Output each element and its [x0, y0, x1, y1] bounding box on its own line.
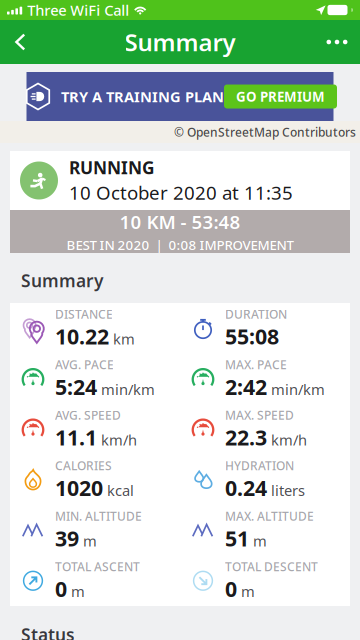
staticText: m: [83, 531, 97, 551]
staticText: HYDRATION: [225, 458, 294, 473]
staticText: km/h: [271, 430, 307, 450]
staticText: Three WiFi Call: [27, 0, 129, 20]
staticText: Summary: [124, 26, 235, 58]
staticText: 10.22: [55, 322, 109, 350]
staticText: GO PREMIUM: [236, 88, 325, 105]
staticText: AVG. SPEED: [55, 407, 121, 423]
staticText: RUNNING: [69, 156, 155, 179]
button[interactable]: TRY A TRAINING PLAN: [26, 64, 333, 121]
staticText: 5:24: [55, 373, 97, 401]
staticText: min/km: [101, 380, 155, 399]
staticText: 1020: [55, 474, 103, 502]
staticText: Status: [21, 623, 75, 640]
staticText: TOTAL ASCENT: [55, 559, 140, 574]
staticText: min/km: [271, 380, 325, 399]
staticText: AVG. PACE: [55, 357, 114, 372]
button[interactable]: Back: [0, 20, 40, 64]
staticText: liters: [271, 481, 305, 500]
staticText: © OpenStreetMap Contributors: [174, 124, 356, 140]
staticText: m: [71, 582, 85, 601]
staticText: MAX. ALTITUDE: [225, 508, 314, 524]
staticText: DURATION: [225, 306, 287, 322]
staticText: Summary: [21, 269, 103, 292]
staticText: DISTANCE: [55, 306, 113, 322]
staticText: m: [253, 531, 267, 551]
staticText: kcal: [107, 481, 134, 500]
staticText: 10 KM - 53:48: [119, 209, 240, 234]
staticText: MIN. ALTITUDE: [55, 508, 142, 524]
staticText: m: [241, 582, 255, 601]
staticText: 2:42: [225, 373, 267, 401]
staticText: 0.24: [225, 474, 267, 502]
staticText: TRY A TRAINING PLAN: [61, 87, 224, 106]
staticText: 51: [225, 524, 249, 552]
staticText: km/h: [101, 430, 137, 450]
staticText: 10 October 2020 at 11:35: [69, 180, 293, 205]
button[interactable]: More options: [314, 20, 360, 64]
staticText: MAX. PACE: [225, 357, 287, 372]
staticText: km: [113, 329, 135, 349]
staticText: 22.3: [225, 423, 267, 451]
staticText: 39: [55, 524, 79, 552]
staticText: 0: [225, 575, 237, 603]
staticText: 55:08: [225, 322, 279, 350]
staticText: CALORIES: [55, 458, 112, 473]
staticText: MAX. SPEED: [225, 407, 294, 423]
staticText: 0: [55, 575, 67, 603]
staticText: TOTAL DESCENT: [225, 559, 318, 574]
staticText: 11.1: [55, 423, 97, 451]
staticText: BEST IN 2020 | 0:08 IMPROVEMENT: [66, 236, 293, 254]
